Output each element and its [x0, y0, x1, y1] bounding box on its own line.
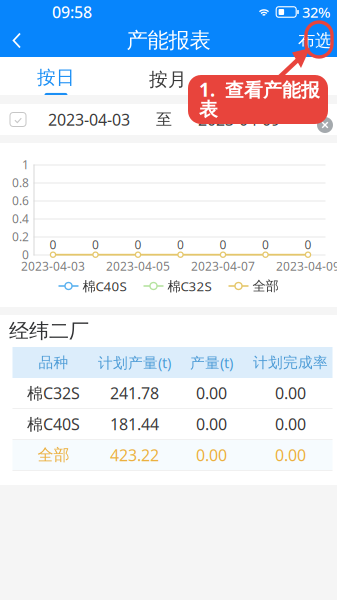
button[interactable]: 2023-04-03: [44, 104, 134, 135]
staticText: 棉C40S: [27, 413, 80, 435]
staticText: 全部: [252, 278, 278, 294]
staticText: 0: [219, 236, 226, 252]
staticText: 0: [262, 236, 269, 252]
staticText: 0.8: [12, 174, 29, 190]
button[interactable]: 2023-04-09: [194, 104, 284, 135]
staticText: 全部: [37, 445, 69, 465]
staticText: 0.6: [12, 192, 29, 208]
staticText: 布选: [298, 30, 332, 51]
staticText: 181.44: [110, 413, 159, 435]
staticText: 0.00: [196, 382, 227, 404]
staticText: 产能报表: [126, 27, 210, 54]
button[interactable]: 布选: [293, 24, 337, 57]
staticText: 0.00: [275, 382, 306, 404]
staticText: 0: [49, 236, 56, 252]
staticText: 1. 查看产能报: [199, 77, 320, 102]
staticText: 0.2: [12, 228, 29, 244]
staticText: 2023-04-05: [106, 258, 170, 274]
staticText: 0: [177, 236, 184, 252]
staticText: 表: [199, 98, 218, 121]
staticText: 2023-04-09: [198, 109, 280, 130]
button[interactable]: 按月: [112, 57, 224, 95]
staticText: 0: [22, 246, 29, 262]
staticText: 0.00: [275, 413, 306, 435]
staticText: 0: [92, 236, 99, 252]
staticText: 计划产量(t): [98, 353, 171, 372]
staticText: 至: [156, 110, 172, 129]
staticText: 按月: [149, 68, 187, 91]
staticText: 32%: [302, 2, 330, 22]
staticText: 0.00: [196, 413, 227, 435]
button[interactable]: 按日: [0, 57, 112, 95]
staticText: 0.00: [275, 444, 306, 466]
staticText: 2023-04-03: [21, 258, 85, 274]
button[interactable]: Pick date range: [3, 104, 33, 135]
staticText: 0: [304, 236, 311, 252]
staticText: 0.00: [196, 444, 227, 466]
staticText: 0: [134, 236, 141, 252]
staticText: 产量(t): [190, 353, 233, 372]
staticText: 棉C40S: [82, 277, 126, 295]
staticText: 品种: [38, 353, 68, 371]
staticText: 2023-04-07: [191, 258, 255, 274]
staticText: 241.78: [110, 382, 159, 404]
staticText: 2023-04-09: [276, 258, 337, 274]
staticText: 09:58: [52, 1, 92, 23]
staticText: 按日: [37, 66, 75, 89]
staticText: 经纬二厂: [9, 319, 89, 343]
staticText: 棉C32S: [27, 382, 80, 404]
staticText: 423.22: [110, 444, 159, 466]
staticText: 1: [22, 156, 29, 172]
staticText: 0.4: [12, 210, 29, 226]
button[interactable]: 1. 查看产能报: [188, 75, 328, 124]
staticText: 棉C32S: [167, 277, 211, 295]
staticText: 2023-04-03: [48, 109, 130, 130]
staticText: 计划完成率: [253, 353, 328, 371]
button[interactable]: Back: [0, 24, 44, 57]
